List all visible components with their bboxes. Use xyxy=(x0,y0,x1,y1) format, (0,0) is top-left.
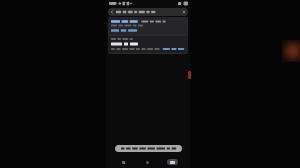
button[interactable]: Back xyxy=(108,8,116,16)
button[interactable]: Back xyxy=(116,158,130,166)
button[interactable] xyxy=(108,17,188,54)
button[interactable]: Recent apps xyxy=(164,158,180,166)
button[interactable]: Back xyxy=(108,8,188,16)
button[interactable]: Clear search xyxy=(179,8,188,16)
button[interactable] xyxy=(115,145,182,152)
button[interactable]: Home xyxy=(140,158,154,166)
